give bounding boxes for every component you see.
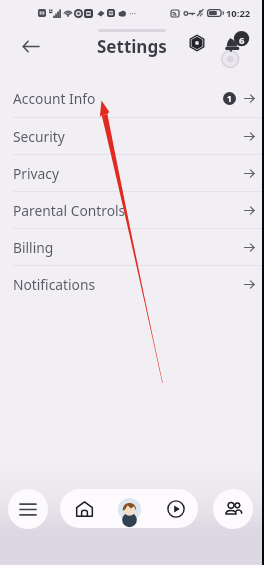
button[interactable]: Friends [213, 489, 253, 529]
staticText: 10:22 [226, 7, 251, 20]
button[interactable]: Privacy [0, 155, 264, 191]
button[interactable]: Roblox [188, 34, 206, 52]
staticText: 6 [239, 34, 245, 47]
button[interactable]: Menu [8, 489, 48, 529]
staticText: Notifications [13, 275, 96, 294]
button[interactable]: Billing [0, 229, 264, 265]
staticText: Billing [13, 238, 54, 257]
button[interactable]: Back [16, 32, 44, 60]
button[interactable]: Avatar [114, 494, 144, 524]
button[interactable]: Home [68, 492, 101, 525]
button[interactable]: Play [161, 494, 191, 524]
staticText: Parental Controls [13, 201, 126, 220]
staticText: Settings [97, 35, 167, 58]
staticText: Account Info [13, 89, 96, 108]
button[interactable]: Profile [218, 28, 250, 60]
button[interactable]: Notifications [0, 266, 264, 302]
staticText: ··· [129, 7, 137, 19]
button[interactable]: Account Info [0, 80, 264, 117]
staticText: Security [13, 127, 65, 146]
button[interactable]: Security [0, 118, 264, 154]
staticText: 1 [227, 93, 232, 105]
staticText: Privacy [13, 164, 60, 183]
button[interactable]: Parental Controls [0, 192, 264, 228]
